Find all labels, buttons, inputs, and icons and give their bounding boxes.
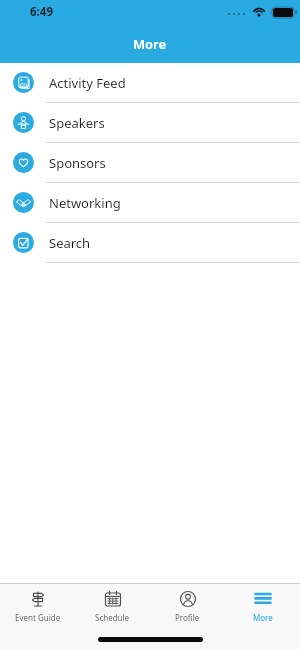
button[interactable]: Event Guide [0,588,75,623]
button[interactable]: Sponsors [0,143,300,183]
staticText: Event Guide [15,612,61,623]
button[interactable]: More [225,588,300,623]
staticText: 6:49 [30,4,53,20]
staticText: Networking [49,194,121,212]
staticText: More [253,612,273,623]
staticText: Speakers [49,114,105,132]
button[interactable]: Profile [150,588,225,623]
staticText: Profile [175,612,200,623]
button[interactable]: Speakers [0,103,300,143]
button[interactable]: Networking [0,183,300,223]
staticText: Search [49,234,91,252]
staticText: Activity Feed [49,74,126,92]
button[interactable]: Activity Feed [0,63,300,103]
staticText: Sponsors [49,154,106,172]
staticText: More [133,35,167,53]
button[interactable]: Schedule [75,588,150,623]
staticText: Schedule [95,612,130,623]
button[interactable]: Search [0,223,300,263]
